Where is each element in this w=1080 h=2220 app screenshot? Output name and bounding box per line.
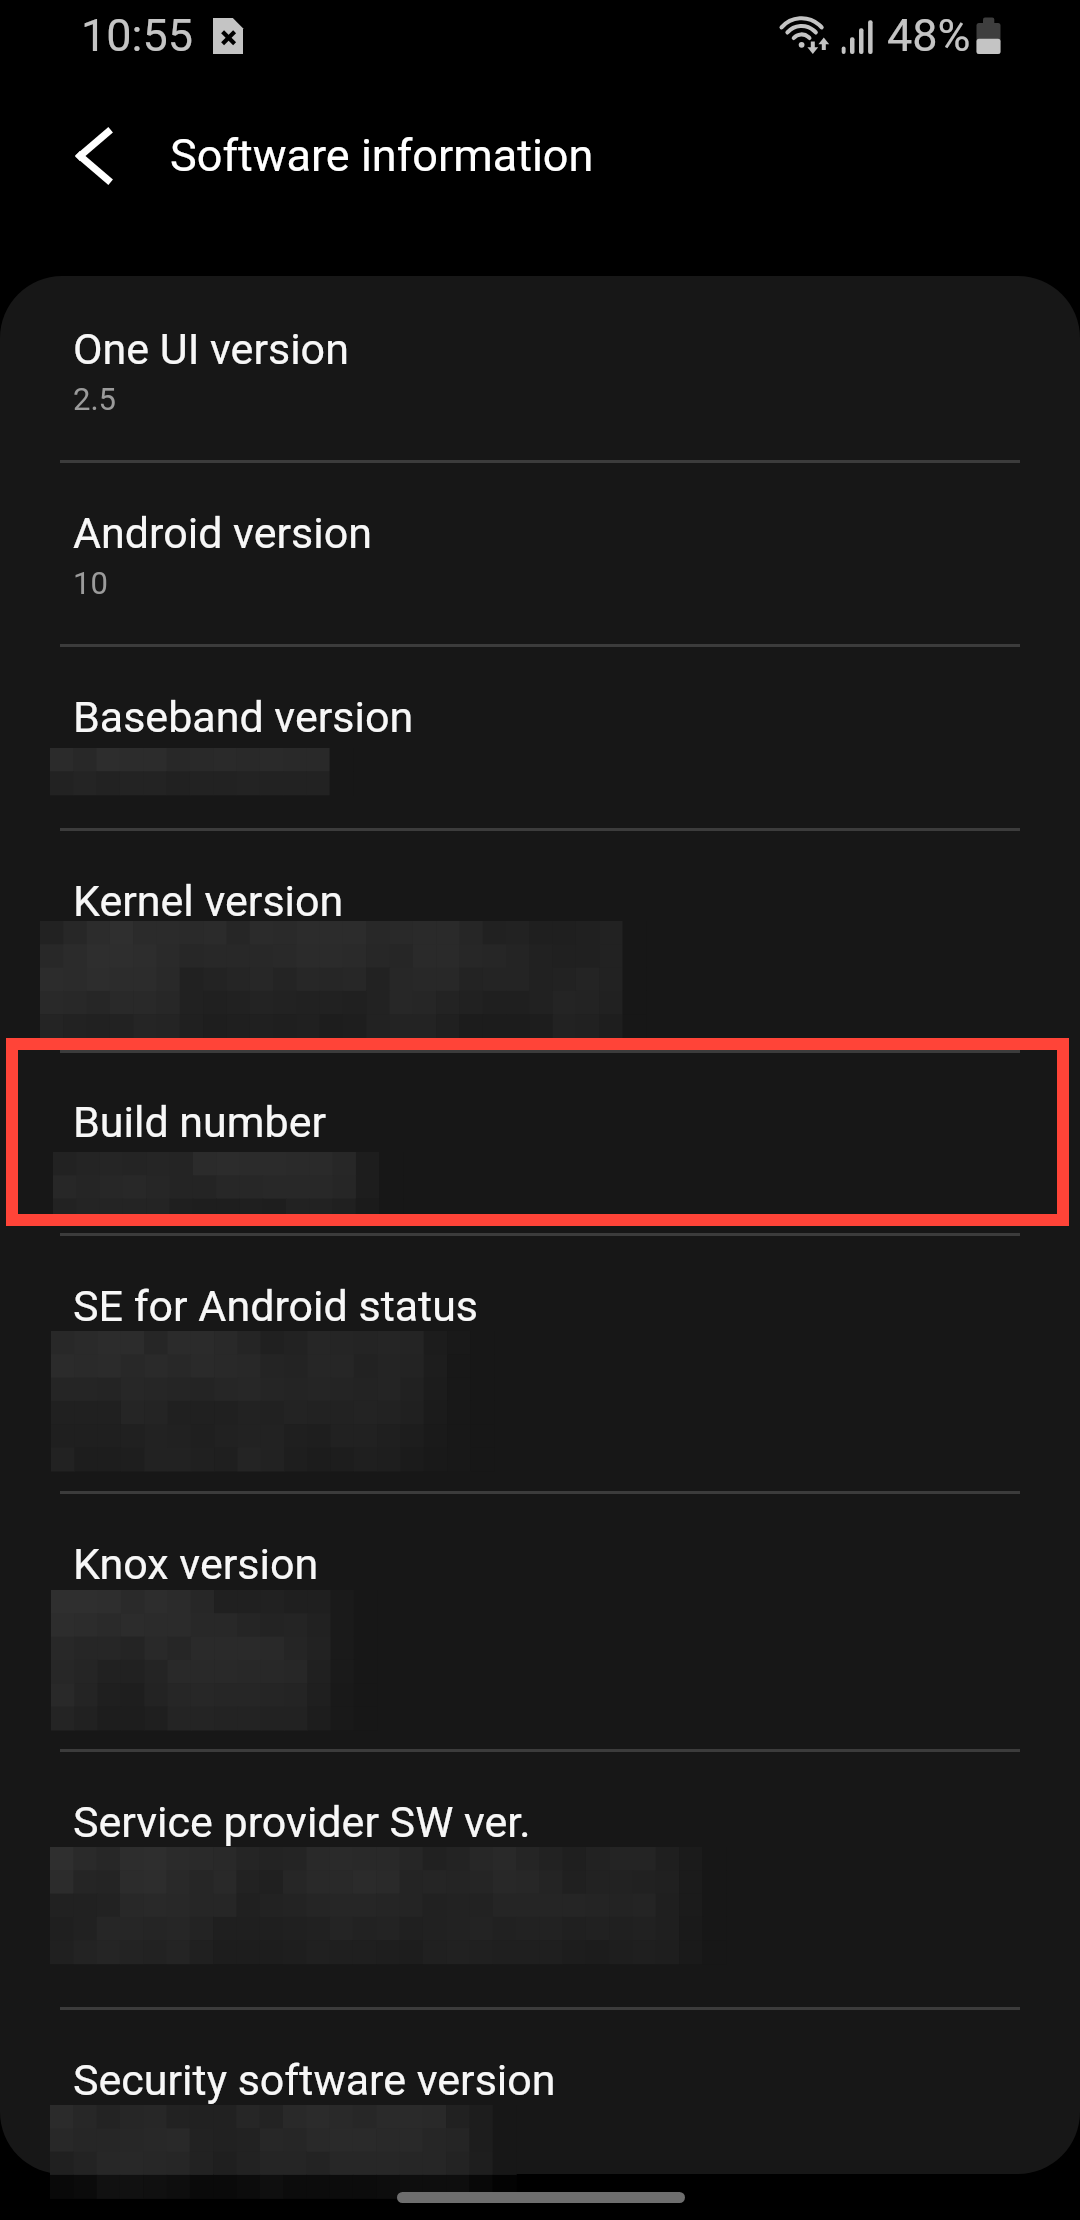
staticText: Baseband version	[73, 692, 414, 742]
button[interactable]: Baseband version	[0, 650, 1080, 829]
button[interactable]: Navigate up	[54, 110, 134, 190]
button[interactable]: Knox version	[0, 1497, 1080, 1750]
staticText: 48%	[887, 9, 971, 62]
staticText: 10	[73, 565, 108, 601]
staticText: One UI version	[73, 324, 349, 374]
staticText: Knox version	[73, 1539, 319, 1589]
button[interactable]: Service provider SW ver.	[0, 1755, 1080, 2008]
staticText: Security software version	[73, 2055, 556, 2105]
staticText: Android version	[73, 508, 372, 558]
button[interactable]: SE for Android status	[0, 1239, 1080, 1492]
staticText: Service provider SW ver.	[73, 1797, 531, 1847]
button[interactable]: Build number	[0, 1055, 1080, 1234]
button[interactable]: One UI version	[0, 282, 1080, 461]
staticText: Kernel version	[73, 876, 344, 926]
button[interactable]: Security software version	[0, 2013, 1080, 2174]
staticText: SE for Android status	[73, 1281, 479, 1331]
staticText: Software information	[170, 129, 594, 182]
staticText: Build number	[73, 1097, 327, 1147]
button[interactable]: Kernel version	[0, 834, 1080, 1051]
button[interactable]: Android version	[0, 466, 1080, 645]
staticText: 10:55	[81, 9, 194, 62]
staticText: 2.5	[73, 381, 117, 417]
